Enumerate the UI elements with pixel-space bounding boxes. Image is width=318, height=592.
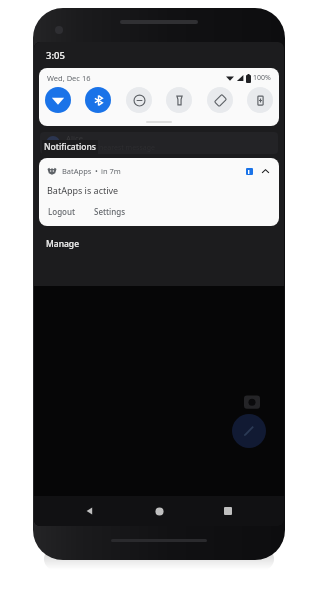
button[interactable]: Flashlight: [166, 87, 192, 113]
staticText: Manage: [46, 238, 80, 250]
button[interactable]: Auto rotate: [207, 87, 233, 113]
staticText: Notifications: [44, 141, 96, 153]
button[interactable]: Wi-Fi: [45, 87, 71, 113]
staticText: BatApps is active: [47, 184, 119, 196]
button[interactable]: Battery saver: [247, 87, 273, 113]
staticText: BatApps: [62, 166, 92, 176]
staticText: •: [95, 166, 98, 176]
button[interactable]: Camera: [244, 394, 260, 410]
staticText: in 7m: [101, 166, 121, 176]
button[interactable]: Manage: [44, 236, 82, 252]
staticText: I'm at the nearest message: [66, 143, 155, 153]
staticText: Wed, Dec 16: [47, 73, 91, 83]
button[interactable]: Home: [146, 498, 172, 524]
button[interactable]: Logout: [47, 205, 77, 218]
button[interactable]: Recent apps: [215, 498, 241, 524]
button[interactable]: BatApps: [39, 158, 279, 226]
button[interactable]: Collapse: [259, 165, 271, 177]
button[interactable]: Do not disturb: [126, 87, 152, 113]
button[interactable]: Settings: [93, 205, 127, 218]
staticText: 100%: [253, 73, 271, 83]
button[interactable]: Bluetooth: [85, 87, 111, 113]
button[interactable]: Back: [77, 498, 103, 524]
staticText: Settings: [94, 206, 126, 217]
staticText: Logout: [48, 206, 76, 217]
staticText: 3:05: [46, 49, 65, 62]
staticText: Alice: [66, 133, 83, 143]
button[interactable]: Compose: [232, 414, 266, 448]
